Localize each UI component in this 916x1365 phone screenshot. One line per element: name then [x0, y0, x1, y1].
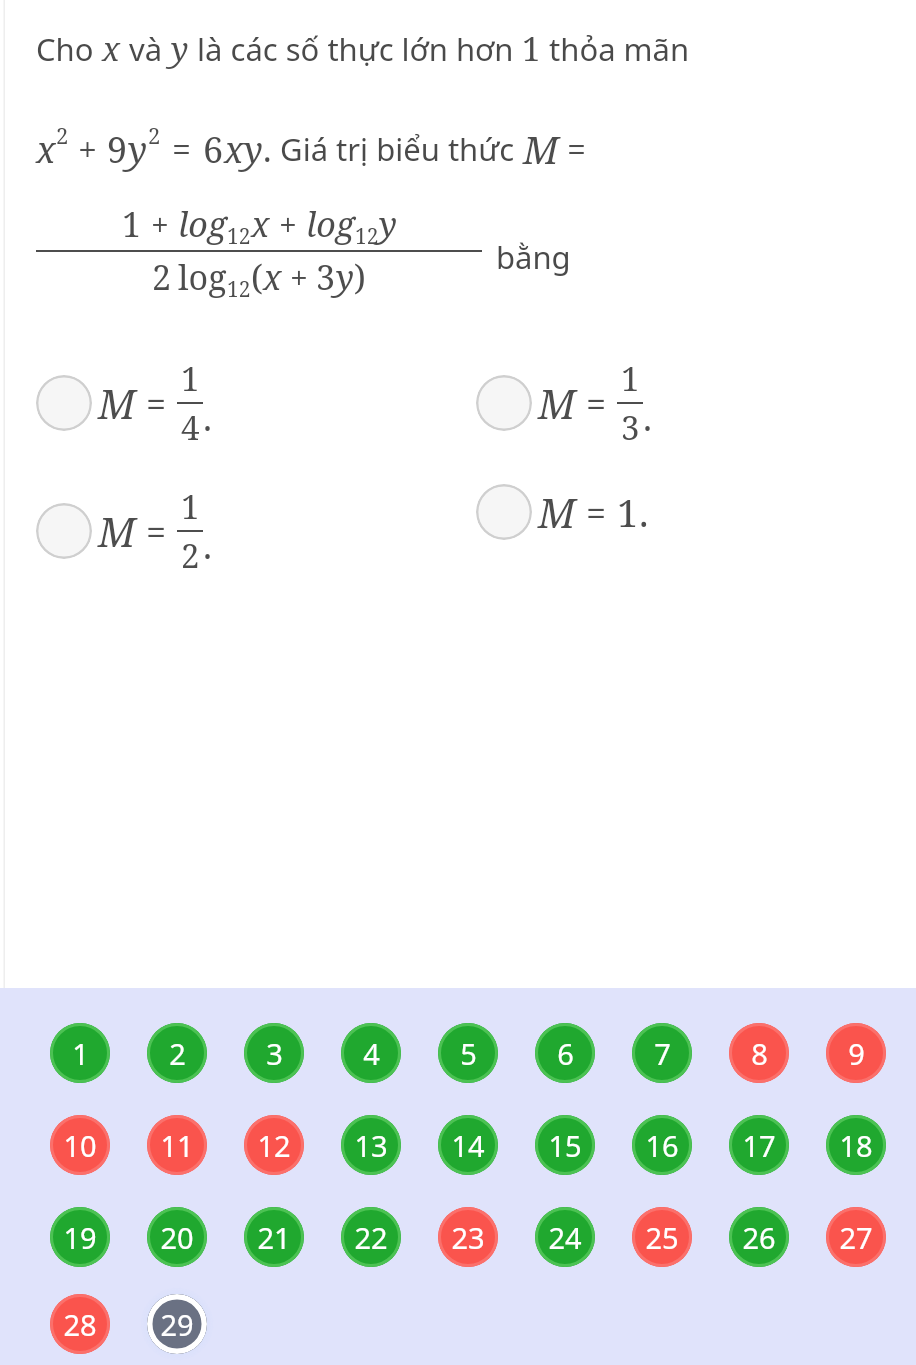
- staticText: 29: [160, 1305, 194, 1344]
- button[interactable]: M: [36, 356, 212, 450]
- staticText: 13: [354, 1126, 388, 1165]
- staticText: ): [354, 254, 366, 300]
- staticText: y: [379, 201, 397, 247]
- staticText: 1: [181, 356, 200, 401]
- staticText: 2: [181, 533, 200, 578]
- staticText: 12: [257, 1126, 291, 1165]
- button[interactable]: 26: [722, 1200, 796, 1274]
- button[interactable]: M: [476, 484, 649, 540]
- button[interactable]: 2: [140, 1016, 214, 1090]
- button[interactable]: 10: [43, 1108, 117, 1182]
- staticText: M: [538, 376, 576, 430]
- staticText: .: [203, 521, 212, 570]
- staticText: 1: [522, 26, 541, 71]
- staticText: 20: [160, 1218, 194, 1257]
- button[interactable]: 21: [237, 1200, 311, 1274]
- staticText: 25: [645, 1218, 679, 1257]
- staticText: +: [279, 203, 297, 247]
- staticText: M: [98, 504, 136, 558]
- staticText: log: [306, 201, 355, 247]
- staticText: 23: [451, 1218, 485, 1257]
- staticText: M: [538, 485, 576, 539]
- staticText: 24: [548, 1218, 582, 1257]
- button[interactable]: 27: [819, 1200, 893, 1274]
- button[interactable]: 5: [431, 1016, 505, 1090]
- staticText: 11: [160, 1126, 194, 1165]
- staticText: 1: [122, 201, 142, 247]
- staticText: 1: [621, 356, 640, 401]
- staticText: 18: [839, 1126, 873, 1165]
- staticText: log: [178, 201, 227, 247]
- staticText: =: [567, 126, 587, 172]
- button[interactable]: 8: [722, 1016, 796, 1090]
- button[interactable]: M: [476, 356, 652, 450]
- staticText: 2: [152, 254, 172, 300]
- staticText: .: [203, 393, 212, 442]
- staticText: =: [146, 507, 167, 556]
- staticText: =: [586, 488, 607, 537]
- button[interactable]: 19: [43, 1200, 117, 1274]
- staticText: 1: [617, 486, 639, 538]
- staticText: M: [523, 123, 559, 175]
- button[interactable]: 9: [819, 1016, 893, 1090]
- button[interactable]: 14: [431, 1108, 505, 1182]
- button[interactable]: 24: [528, 1200, 602, 1274]
- button[interactable]: 15: [528, 1108, 602, 1182]
- staticText: 3: [266, 1034, 283, 1073]
- staticText: bằng: [496, 236, 571, 278]
- staticText: 10: [63, 1126, 97, 1165]
- staticText: 12: [227, 275, 251, 304]
- staticText: x: [102, 26, 121, 71]
- staticText: 4: [181, 405, 200, 450]
- staticText: 22: [354, 1218, 388, 1257]
- staticText: +: [151, 203, 169, 247]
- staticText: +: [78, 126, 98, 172]
- staticText: 3: [621, 405, 640, 450]
- staticText: y: [128, 125, 148, 174]
- staticText: 28: [63, 1305, 97, 1344]
- button[interactable]: M: [36, 484, 212, 578]
- staticText: và: [121, 28, 171, 70]
- staticText: 17: [742, 1126, 776, 1165]
- staticText: 2: [56, 120, 69, 150]
- button[interactable]: 17: [722, 1108, 796, 1182]
- staticText: 16: [645, 1126, 679, 1165]
- button[interactable]: 12: [237, 1108, 311, 1182]
- button[interactable]: 1: [43, 1016, 117, 1090]
- staticText: 1: [181, 484, 200, 529]
- button[interactable]: 4: [334, 1016, 408, 1090]
- staticText: 27: [839, 1218, 873, 1257]
- staticText: M: [98, 376, 136, 430]
- button[interactable]: 29: [140, 1287, 214, 1361]
- staticText: y: [336, 254, 354, 300]
- button[interactable]: 16: [625, 1108, 699, 1182]
- button[interactable]: 3: [237, 1016, 311, 1090]
- staticText: xy: [224, 125, 263, 174]
- button[interactable]: 11: [140, 1108, 214, 1182]
- staticText: thỏa mãn: [541, 28, 690, 70]
- button[interactable]: 20: [140, 1200, 214, 1274]
- staticText: log: [178, 254, 227, 300]
- button[interactable]: 7: [625, 1016, 699, 1090]
- staticText: 9: [107, 125, 128, 174]
- button[interactable]: 22: [334, 1200, 408, 1274]
- staticText: 12: [227, 222, 251, 251]
- staticText: .: [643, 393, 652, 442]
- button[interactable]: 6: [528, 1016, 602, 1090]
- staticText: 6: [203, 125, 224, 174]
- staticText: 1: [72, 1034, 89, 1073]
- button[interactable]: 18: [819, 1108, 893, 1182]
- staticText: .: [639, 486, 649, 538]
- staticText: +: [290, 256, 308, 300]
- button[interactable]: 25: [625, 1200, 699, 1274]
- staticText: 2: [148, 120, 161, 150]
- staticText: y: [171, 26, 189, 71]
- button[interactable]: 28: [43, 1287, 117, 1361]
- button[interactable]: 23: [431, 1200, 505, 1274]
- staticText: 4: [363, 1034, 380, 1073]
- staticText: 12: [355, 222, 379, 251]
- staticText: x: [251, 201, 270, 247]
- staticText: =: [586, 379, 607, 428]
- button[interactable]: 13: [334, 1108, 408, 1182]
- staticText: Cho: [36, 28, 102, 70]
